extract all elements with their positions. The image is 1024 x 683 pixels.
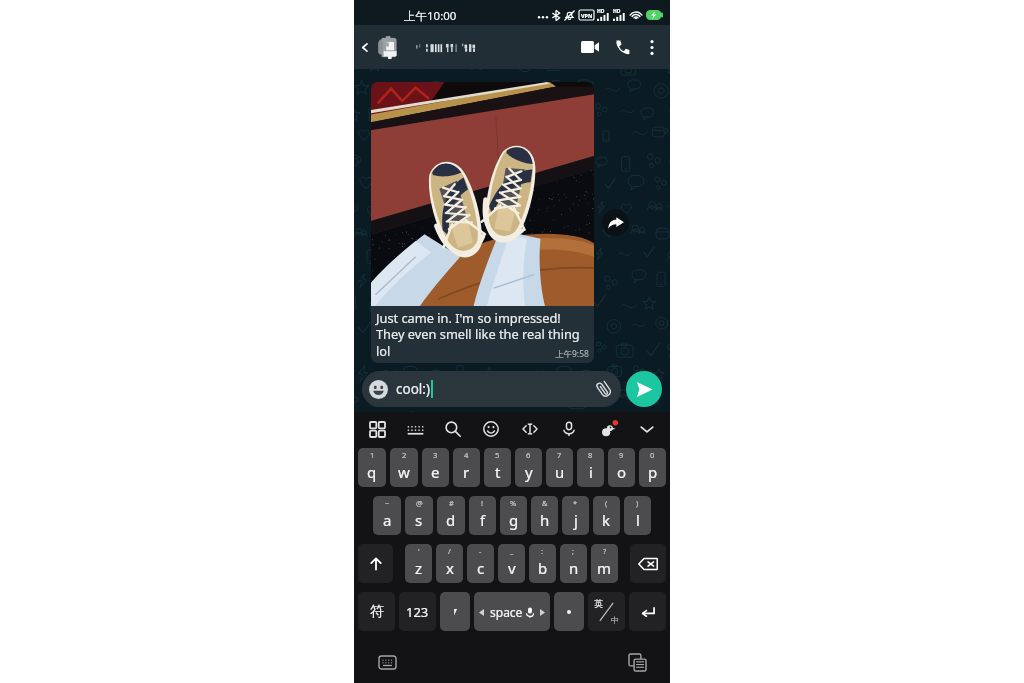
staticText: c: [477, 558, 485, 578]
staticText: 2: [402, 450, 407, 460]
button[interactable]: [377, 25, 574, 69]
button[interactable]: Apps: [362, 414, 392, 444]
button[interactable]: Move cursor: [515, 414, 545, 444]
button[interactable]: 6: [515, 448, 542, 487]
staticText: l: [636, 510, 640, 530]
button[interactable]: cool:): [362, 371, 621, 407]
button[interactable]: [629, 592, 666, 631]
staticText: z: [415, 558, 423, 578]
staticText: n: [569, 558, 579, 578]
staticText: v: [508, 558, 516, 578]
button[interactable]: [358, 544, 393, 583]
staticText: ?: [603, 546, 607, 556]
button[interactable]: -: [467, 544, 494, 583]
staticText: :: [541, 546, 544, 556]
button[interactable]: Clipboard: [624, 649, 650, 675]
button[interactable]: /: [436, 544, 463, 583]
staticText: m: [597, 558, 612, 578]
staticText: #: [449, 498, 454, 508]
staticText: %: [510, 498, 517, 508]
staticText: 7: [557, 450, 562, 460]
button[interactable]: 符: [358, 592, 395, 631]
staticText: _: [510, 546, 514, 556]
button[interactable]: 3: [422, 448, 449, 487]
button[interactable]: %: [500, 496, 527, 535]
staticText: 123: [406, 603, 429, 621]
staticText: j: [574, 510, 578, 530]
button[interactable]: [554, 592, 584, 631]
button[interactable]: 123: [399, 592, 436, 631]
staticText: o: [617, 462, 627, 482]
button[interactable]: 英: [588, 592, 625, 631]
staticText: ): [636, 498, 639, 508]
button[interactable]: ': [405, 544, 432, 583]
staticText: 8: [588, 450, 593, 460]
staticText: a: [383, 510, 392, 530]
button[interactable]: 4: [453, 448, 480, 487]
button[interactable]: 2: [390, 448, 418, 487]
button[interactable]: 5: [484, 448, 511, 487]
button[interactable]: Emoji: [476, 414, 506, 444]
staticText: (: [605, 498, 608, 508]
button[interactable]: _: [498, 544, 525, 583]
button[interactable]: Call: [606, 31, 638, 63]
button[interactable]: Send: [626, 371, 662, 407]
button[interactable]: 7: [546, 448, 573, 487]
button[interactable]: 1: [358, 448, 386, 487]
button[interactable]: &: [531, 496, 558, 535]
staticText: 9: [619, 450, 624, 460]
button[interactable]: ?: [591, 544, 618, 583]
button[interactable]: Switch keyboard: [374, 649, 400, 675]
button[interactable]: @: [405, 496, 433, 535]
button[interactable]: #: [437, 496, 465, 535]
button[interactable]: Back: [356, 39, 372, 55]
button[interactable]: [630, 544, 666, 583]
staticText: k: [602, 510, 611, 530]
button[interactable]: !: [469, 496, 496, 535]
button[interactable]: 0: [639, 448, 666, 487]
staticText: Just came in. I'm so impressed! They eve…: [376, 309, 580, 360]
button[interactable]: ~: [373, 496, 401, 535]
button[interactable]: ): [624, 496, 651, 535]
button[interactable]: 8: [577, 448, 604, 487]
staticText: e: [431, 462, 440, 482]
staticText: @: [416, 498, 423, 508]
staticText: 上午9:58: [555, 348, 589, 360]
staticText: u: [555, 462, 565, 482]
staticText: w: [398, 462, 410, 482]
button[interactable]: Video call: [574, 31, 606, 63]
staticText: s: [415, 510, 423, 530]
button[interactable]: More options: [638, 33, 666, 61]
button[interactable]: space: [474, 592, 550, 631]
button[interactable]: :: [529, 544, 556, 583]
staticText: /: [448, 546, 451, 556]
button[interactable]: Search: [438, 414, 468, 444]
button[interactable]: Voice input: [554, 414, 584, 444]
button[interactable]: (: [593, 496, 620, 535]
staticText: ': [418, 546, 420, 556]
button[interactable]: Stickers: [593, 414, 623, 444]
staticText: d: [446, 510, 456, 530]
staticText: VPN: [581, 12, 593, 19]
staticText: f: [480, 510, 486, 530]
button[interactable]: [440, 592, 470, 631]
staticText: 4: [464, 450, 469, 460]
staticText: space: [490, 604, 523, 620]
staticText: 符: [370, 603, 384, 621]
staticText: *: [573, 498, 578, 508]
staticText: p: [648, 462, 658, 482]
staticText: 上午10:00: [404, 8, 457, 24]
button[interactable]: Forward: [602, 209, 629, 236]
button[interactable]: *: [562, 496, 589, 535]
button[interactable]: ;: [560, 544, 587, 583]
staticText: x: [446, 558, 454, 578]
staticText: y: [525, 462, 533, 482]
button[interactable]: Keyboard layout: [400, 414, 430, 444]
button[interactable]: Attach: [589, 374, 619, 404]
button[interactable]: 9: [608, 448, 635, 487]
staticText: 5: [495, 450, 500, 460]
staticText: 中: [611, 615, 619, 625]
staticText: 英: [594, 598, 603, 609]
staticText: &: [542, 498, 548, 508]
button[interactable]: Collapse keyboard: [632, 414, 662, 444]
